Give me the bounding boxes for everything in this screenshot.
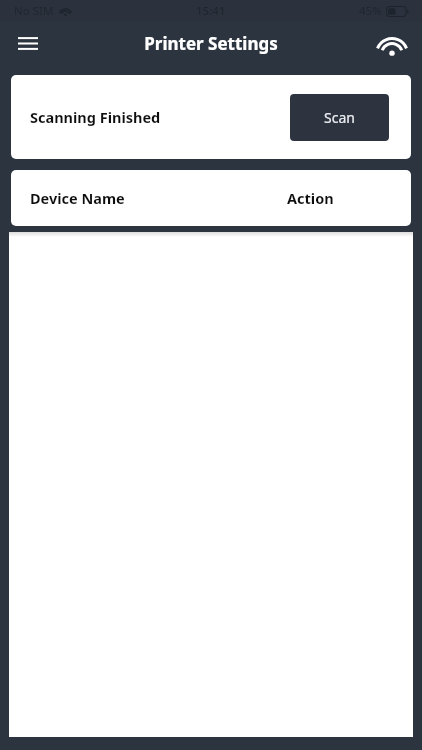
staticText: Scanning Finished [30,107,161,127]
staticText: Printer Settings [144,32,278,55]
staticText: Scan [324,108,355,127]
button[interactable]: Wi-Fi [370,22,414,64]
button[interactable]: Scan [290,94,389,141]
staticText: Device Name [30,188,125,208]
staticText: 45% [359,3,382,19]
button[interactable]: Menu [10,25,46,61]
staticText: 15:41 [196,3,226,19]
staticText: Action [287,188,334,208]
staticText: No SIM [14,3,54,19]
